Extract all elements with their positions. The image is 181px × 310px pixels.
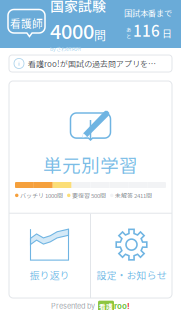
button[interactable]: 単元別学習	[9, 81, 172, 213]
staticText: roo	[114, 301, 127, 310]
staticText: 看護師	[10, 15, 43, 31]
staticText: !	[127, 301, 130, 310]
staticText: 問	[94, 26, 106, 44]
staticText: 国家試験	[50, 0, 106, 16]
button[interactable]: 振り返り	[9, 218, 90, 294]
staticText: 日	[162, 26, 172, 40]
staticText: Presented by	[51, 302, 95, 310]
staticText: 国試本番まで	[124, 7, 172, 19]
staticText: byさわ研究所	[50, 45, 81, 52]
staticText: 設定・お知らせ	[96, 268, 166, 282]
button[interactable]: 設定・お知らせ	[91, 218, 172, 294]
staticText: 看護	[99, 301, 113, 310]
staticText: 単元別学習	[43, 151, 138, 178]
staticText: 看護roo!が国試の過去問アプリをリリー	[28, 58, 163, 69]
staticText: 振り返り	[29, 268, 69, 282]
staticText: 116	[133, 19, 160, 41]
staticText: 4000	[50, 16, 94, 45]
staticText: あ	[126, 26, 131, 33]
button[interactable]: お知らせ	[9, 55, 172, 72]
staticText: と	[126, 32, 131, 40]
staticText: バッチリ 1000問	[20, 191, 63, 200]
staticText: 未解答 2411問	[115, 191, 152, 200]
staticText: 要復習 500問	[72, 191, 106, 200]
